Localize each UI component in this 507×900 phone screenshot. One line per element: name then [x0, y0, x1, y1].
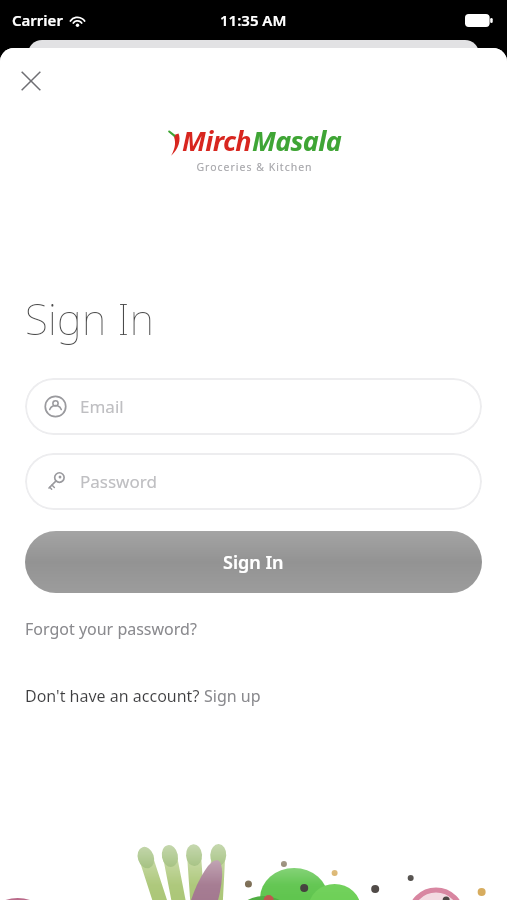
button[interactable]: Sign up — [204, 685, 261, 707]
staticText: Forgot your password? — [25, 618, 197, 640]
button[interactable]: Forgot your password? — [25, 618, 197, 640]
staticText: Password — [80, 470, 157, 493]
button[interactable]: Sign In — [25, 531, 482, 593]
staticText: Don't have an account? — [25, 685, 204, 707]
staticText: Carrier — [12, 10, 63, 30]
staticText: Sign In — [25, 290, 155, 347]
button[interactable]: Close — [14, 64, 48, 98]
staticText: Masala — [252, 122, 342, 159]
button[interactable]: Password — [25, 453, 482, 510]
button[interactable]: Email — [25, 378, 482, 435]
staticText: Sign up — [204, 685, 261, 707]
staticText: Mirch — [182, 122, 252, 159]
staticText: Email — [80, 395, 124, 418]
staticText: Sign In — [223, 550, 284, 575]
staticText: Groceries & Kitchen — [196, 160, 313, 174]
staticText: 11:35 AM — [220, 10, 287, 30]
